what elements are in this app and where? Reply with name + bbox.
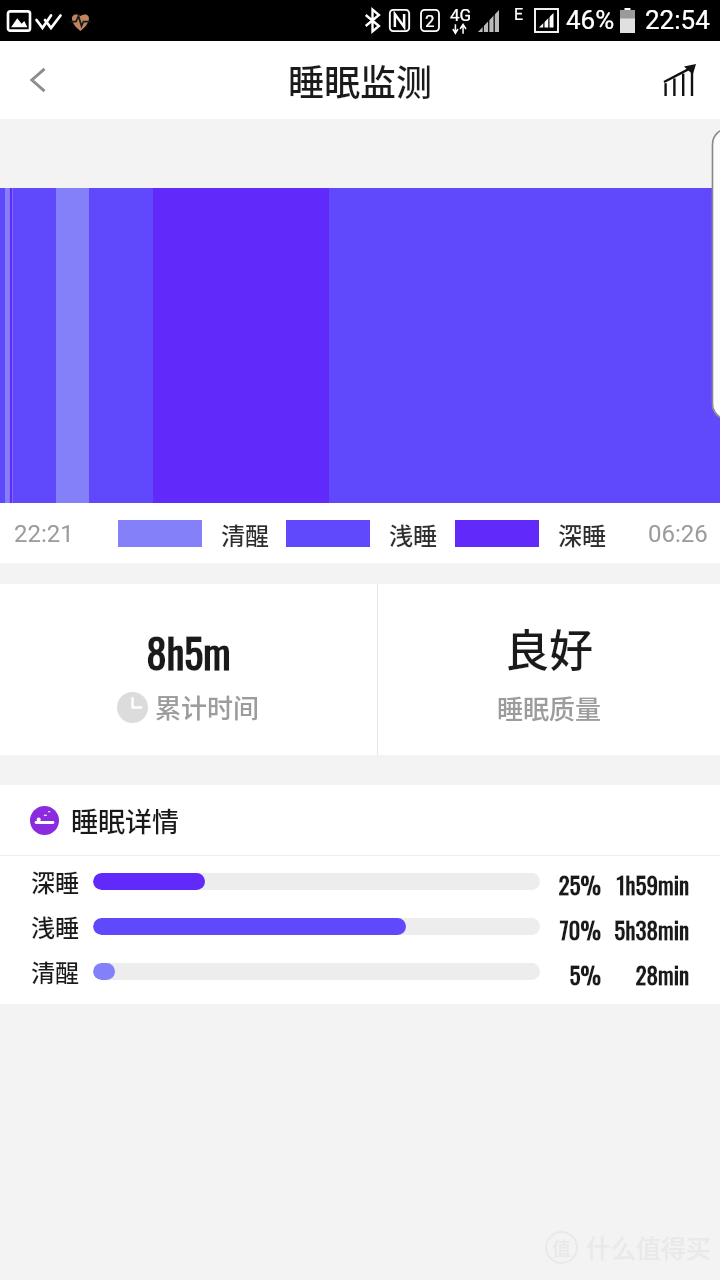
staticText: 睡眠质量	[378, 689, 720, 727]
staticText: 8h5m	[0, 622, 377, 681]
staticText: 70%	[541, 913, 601, 947]
staticText: 46%	[566, 5, 615, 35]
staticText: 5%	[541, 958, 601, 992]
staticText: 累计时间	[155, 688, 260, 726]
staticText: 浅睡	[31, 909, 79, 944]
button[interactable]: Back	[0, 41, 76, 119]
button[interactable]: 睡眠详情	[30, 785, 720, 855]
staticText: 什么值得买	[586, 1229, 712, 1265]
staticText: 深睡	[558, 517, 606, 552]
staticText: 睡眠监测	[288, 54, 433, 106]
staticText: 2	[425, 11, 435, 31]
staticText: 5h38min	[589, 913, 689, 947]
staticText: 25%	[541, 868, 601, 902]
staticText: 22:54	[645, 5, 710, 35]
staticText: 28min	[589, 958, 689, 992]
staticText: 清醒	[31, 954, 79, 989]
staticText: 4G	[450, 5, 472, 25]
staticText: 深睡	[31, 864, 79, 899]
staticText: 06:26	[648, 520, 708, 548]
staticText: E	[514, 5, 524, 24]
staticText: 良好	[378, 616, 720, 680]
staticText: 值	[552, 1234, 572, 1262]
staticText: 浅睡	[389, 517, 437, 552]
button[interactable]: Statistics	[640, 41, 720, 119]
staticText: 22:21	[14, 520, 74, 548]
staticText: 睡眠详情	[71, 801, 179, 840]
staticText: 清醒	[221, 517, 269, 552]
staticText: 1h59min	[589, 868, 689, 902]
